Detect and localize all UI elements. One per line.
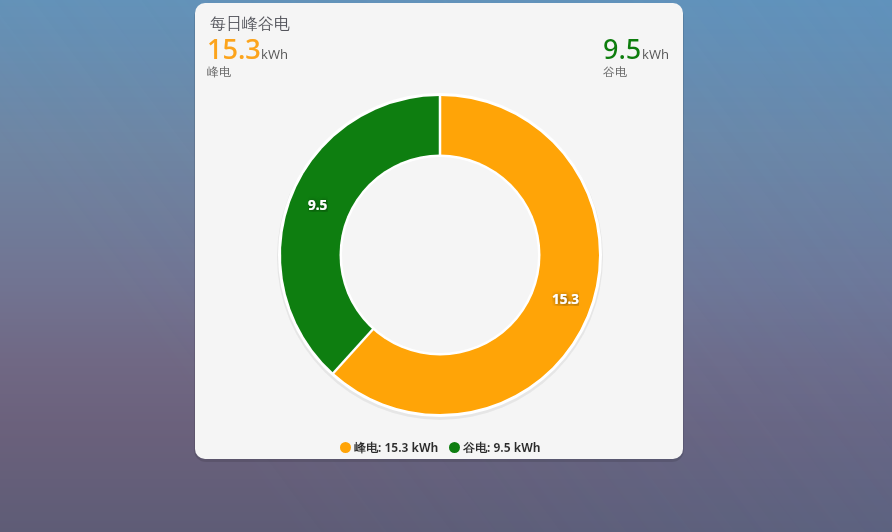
staticText: 9.5 bbox=[603, 30, 642, 67]
staticText: 峰电 bbox=[207, 64, 231, 79]
staticText: kWh bbox=[261, 45, 289, 63]
staticText: 谷电 bbox=[603, 64, 627, 79]
staticText: 每日峰谷电 bbox=[210, 14, 290, 34]
staticText: 15.3 bbox=[552, 290, 579, 306]
staticText: 谷电: 9.5 kWh bbox=[463, 439, 541, 455]
staticText: kWh bbox=[642, 45, 670, 63]
staticText: 峰电: 15.3 kWh bbox=[354, 439, 439, 455]
staticText: 15.3 bbox=[207, 30, 261, 67]
button[interactable] bbox=[340, 442, 351, 453]
button[interactable]: 每日峰谷电 bbox=[195, 3, 683, 459]
staticText: 9.5 bbox=[308, 196, 328, 212]
button[interactable] bbox=[449, 442, 460, 453]
